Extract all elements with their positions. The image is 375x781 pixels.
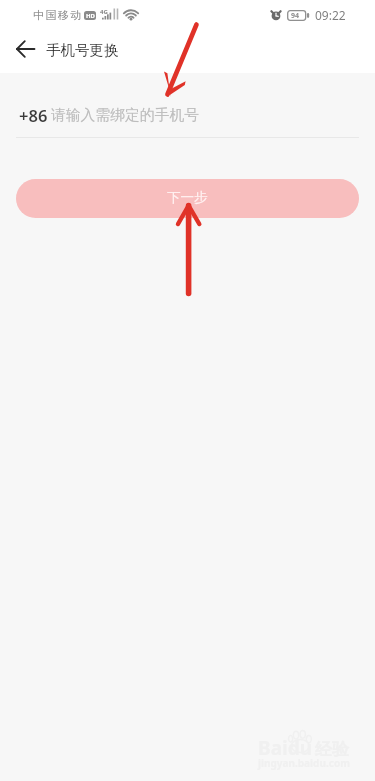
staticText: 09:22 [315,7,346,23]
staticText: HD [86,12,95,20]
staticText: +86 [19,104,48,126]
staticText: Baidu [258,735,313,761]
staticText: 请输入需绑定的手机号 [51,106,199,125]
staticText: 手机号更换 [46,41,119,59]
staticText: 94 [291,11,300,21]
staticText: 下一步 [167,189,208,206]
staticText: 4G [100,8,108,16]
button[interactable]: 下一步 [16,179,359,218]
staticText: 中国移动 [33,8,83,22]
staticText: 经验 [315,739,349,760]
button[interactable]: Back [9,35,41,67]
